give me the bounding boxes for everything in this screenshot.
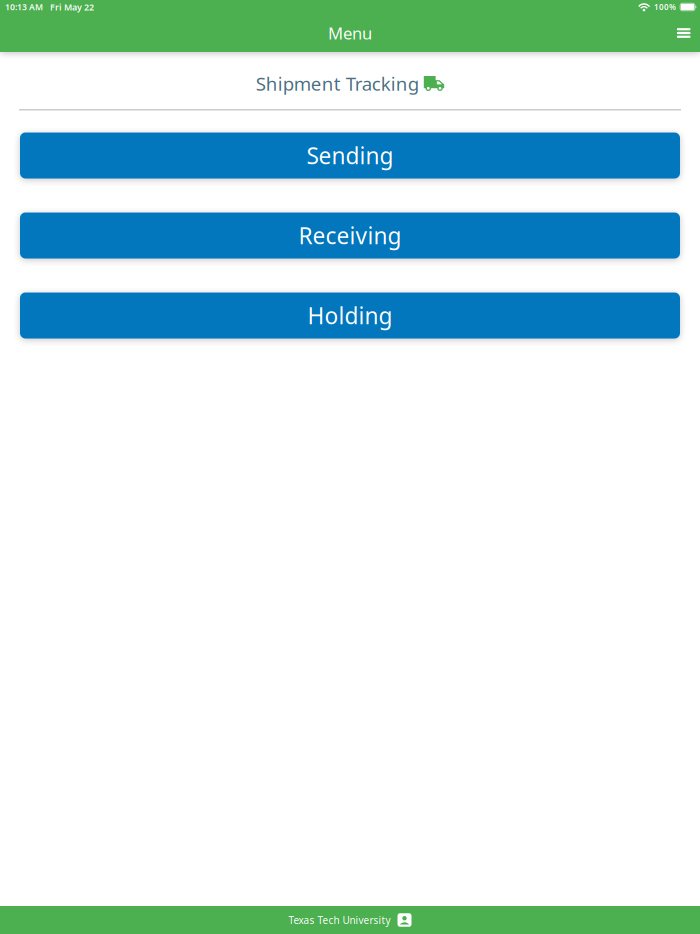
staticText: 10:13 AM	[5, 1, 43, 13]
button[interactable]: Receiving	[20, 212, 680, 258]
staticText: Fri May 22	[50, 1, 94, 13]
button[interactable]: Menu	[667, 21, 700, 45]
staticText: Menu	[328, 22, 372, 44]
staticText: Texas Tech University	[288, 913, 390, 927]
staticText: Sending	[306, 140, 393, 171]
button[interactable]: Sending	[20, 132, 680, 178]
staticText: Holding	[307, 300, 392, 331]
button[interactable]: Holding	[20, 292, 680, 338]
staticText: Receiving	[298, 220, 401, 251]
staticText: 100%	[654, 2, 676, 12]
staticText: Shipment Tracking	[256, 71, 419, 96]
